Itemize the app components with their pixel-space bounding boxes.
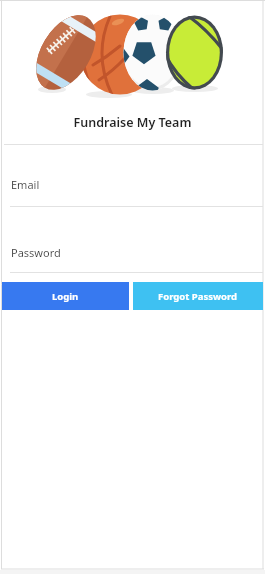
staticText: Login [52,290,79,303]
staticText: Password [11,245,61,260]
button[interactable]: Login [2,282,129,310]
staticText: Email [11,177,40,192]
button[interactable]: Forgot Password [133,282,263,310]
button[interactable]: Password [2,236,263,272]
staticText: Fundraise My Team [0,114,265,131]
button[interactable]: Email [2,168,263,206]
staticText: Forgot Password [158,290,238,303]
